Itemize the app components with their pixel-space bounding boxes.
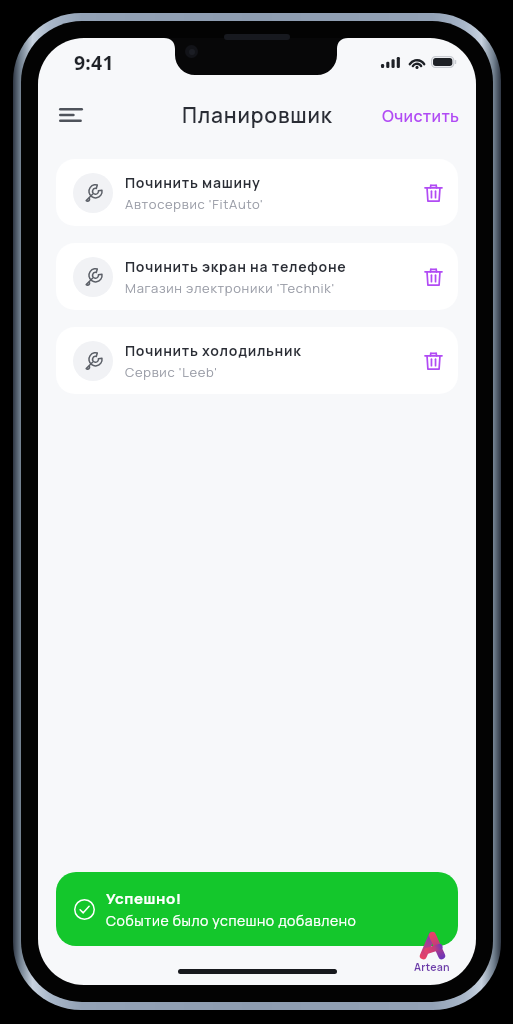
- staticText: Планировшик: [182, 101, 333, 130]
- button[interactable]: Починить экран на телефоне: [56, 243, 458, 310]
- staticText: Успешно!: [106, 888, 182, 908]
- button[interactable]: Успешно!: [56, 872, 458, 946]
- staticText: Починить холодильник: [125, 341, 302, 360]
- staticText: Починить машину: [125, 173, 261, 192]
- staticText: Artean: [414, 960, 450, 974]
- staticText: Починить экран на телефоне: [125, 257, 347, 276]
- staticText: Сервис 'Leeb': [125, 363, 218, 381]
- staticText: Магазин электроники 'Technik': [125, 279, 335, 297]
- button[interactable]: Починить машину: [56, 159, 458, 226]
- button[interactable]: Delete: [416, 176, 450, 210]
- button[interactable]: Menu: [49, 93, 93, 137]
- button[interactable]: Delete: [416, 344, 450, 378]
- staticText: Очистить: [382, 105, 460, 127]
- button[interactable]: Delete: [416, 260, 450, 294]
- staticText: Автосервис 'FitAuto': [125, 195, 264, 213]
- staticText: Событие было успешно добавлено: [106, 911, 357, 930]
- button[interactable]: Починить холодильник: [56, 327, 458, 394]
- staticText: 9:41: [74, 49, 114, 76]
- button[interactable]: Очистить: [374, 97, 468, 135]
